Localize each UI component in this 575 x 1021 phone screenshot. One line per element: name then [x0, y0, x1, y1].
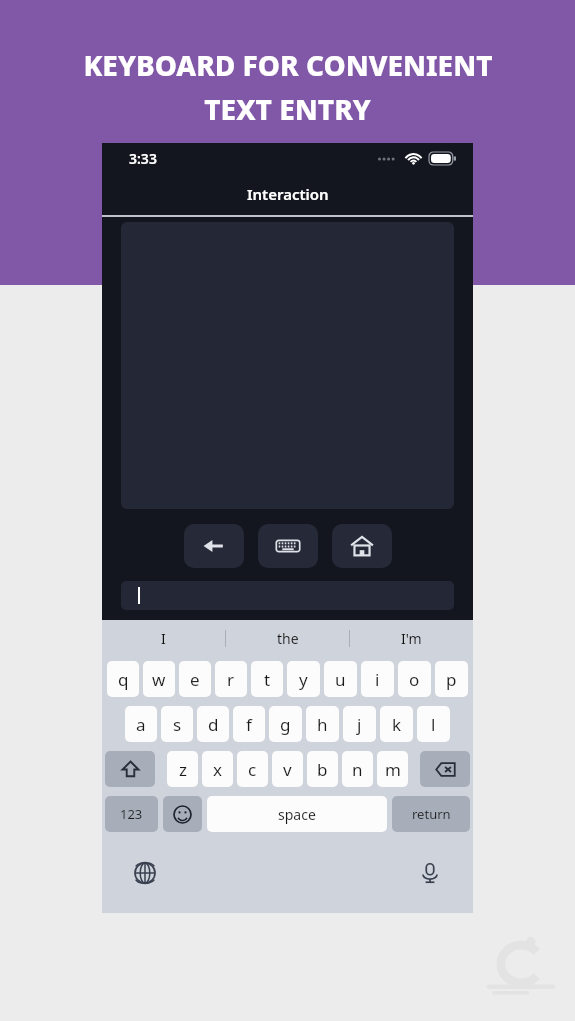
button[interactable]: y: [287, 661, 320, 697]
staticText: o: [409, 668, 420, 691]
button[interactable]: x: [202, 751, 233, 787]
button[interactable]: u: [324, 661, 357, 697]
button[interactable]: b: [307, 751, 338, 787]
button[interactable]: m: [377, 751, 408, 787]
staticText: i: [375, 668, 380, 691]
button[interactable]: j: [343, 706, 376, 742]
button[interactable]: c: [237, 751, 268, 787]
button[interactable]: v: [272, 751, 303, 787]
staticText: b: [317, 758, 328, 781]
button[interactable]: 123: [105, 796, 158, 832]
staticText: 123: [120, 805, 143, 823]
button[interactable]: l: [417, 706, 450, 742]
button[interactable]: z: [167, 751, 198, 787]
staticText: c: [248, 758, 257, 781]
button[interactable]: Dictation: [415, 858, 445, 888]
staticText: f: [246, 713, 252, 736]
staticText: KEYBOARD FOR CONVENIENT: [83, 46, 493, 84]
button[interactable]: o: [398, 661, 431, 697]
staticText: w: [152, 668, 166, 691]
staticText: j: [357, 713, 362, 736]
button[interactable]: t: [251, 661, 283, 697]
button[interactable]: q: [107, 661, 139, 697]
button[interactable]: Home: [332, 524, 392, 568]
staticText: e: [190, 668, 200, 691]
staticText: 3:33: [129, 149, 157, 168]
staticText: p: [446, 668, 457, 691]
staticText: I'm: [401, 629, 422, 648]
button[interactable]: Keyboard: [258, 524, 318, 568]
button[interactable]: return: [392, 796, 470, 832]
staticText: z: [179, 758, 187, 781]
button[interactable]: Backspace: [420, 751, 470, 787]
staticText: l: [431, 713, 436, 736]
staticText: u: [335, 668, 346, 691]
button[interactable]: a: [125, 706, 157, 742]
staticText: Interaction: [247, 184, 329, 204]
button[interactable]: p: [435, 661, 468, 697]
staticText: s: [173, 713, 182, 736]
staticText: a: [136, 713, 146, 736]
button[interactable]: Emoji: [163, 796, 202, 832]
staticText: x: [213, 758, 222, 781]
staticText: the: [277, 629, 299, 648]
staticText: I: [161, 629, 166, 648]
button[interactable]: Shift: [105, 751, 155, 787]
staticText: n: [352, 758, 363, 781]
staticText: r: [227, 668, 235, 691]
button[interactable]: r: [215, 661, 247, 697]
button[interactable]: f: [233, 706, 265, 742]
staticText: k: [392, 713, 402, 736]
staticText: m: [385, 758, 401, 781]
staticText: d: [208, 713, 219, 736]
staticText: return: [412, 805, 451, 823]
button[interactable]: e: [179, 661, 211, 697]
button[interactable]: [121, 581, 454, 610]
staticText: space: [278, 805, 316, 824]
button[interactable]: space: [207, 796, 387, 832]
staticText: g: [280, 713, 291, 736]
staticText: TEXT ENTRY: [204, 90, 371, 128]
button[interactable]: n: [342, 751, 373, 787]
button[interactable]: the: [226, 620, 349, 657]
staticText: h: [317, 713, 328, 736]
button[interactable]: w: [143, 661, 175, 697]
button[interactable]: d: [197, 706, 229, 742]
button[interactable]: h: [306, 706, 339, 742]
staticText: t: [264, 668, 271, 691]
button[interactable]: i: [361, 661, 394, 697]
button[interactable]: k: [380, 706, 413, 742]
staticText: v: [283, 758, 292, 781]
staticText: q: [118, 668, 129, 691]
button[interactable]: g: [269, 706, 302, 742]
button[interactable]: Back: [184, 524, 244, 568]
button[interactable]: I: [102, 620, 225, 657]
button[interactable]: I'm: [350, 620, 473, 657]
button[interactable]: Change keyboard: [130, 858, 160, 888]
staticText: y: [299, 668, 308, 691]
button[interactable]: s: [161, 706, 193, 742]
